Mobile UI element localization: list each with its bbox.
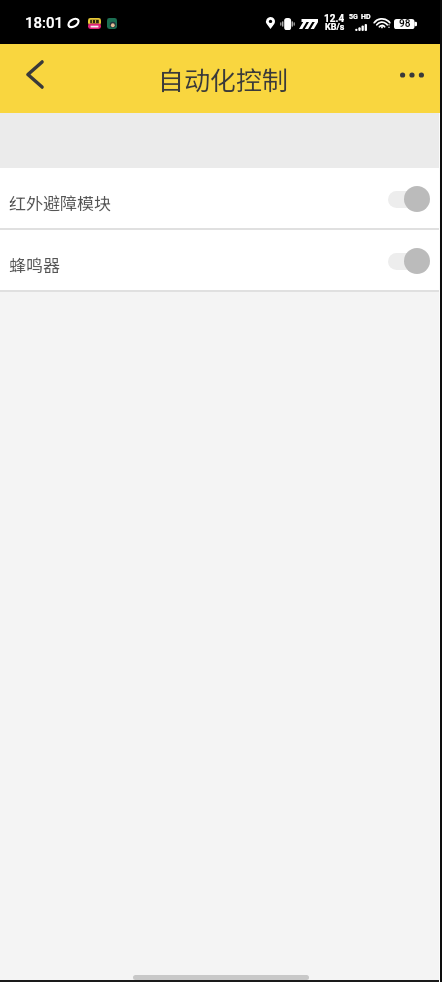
staticText: 5G [349, 13, 358, 21]
staticText: HD [361, 13, 371, 21]
button[interactable]: Back [0, 44, 60, 113]
staticText: 自动化控制 [158, 60, 289, 98]
button[interactable]: 蜂鸣器 [0, 230, 442, 290]
staticText: 蜂鸣器 [9, 252, 60, 277]
staticText: 98 [399, 18, 411, 30]
button[interactable]: Toggle [388, 186, 430, 212]
button[interactable]: Toggle [388, 248, 430, 274]
staticText: 18:01 [25, 14, 64, 32]
button[interactable]: More options [386, 44, 442, 113]
staticText: 红外避障模块 [9, 190, 111, 215]
staticText: KB/s [325, 22, 345, 33]
button[interactable]: 红外避障模块 [0, 168, 442, 228]
staticText: 12.4 [324, 13, 345, 25]
